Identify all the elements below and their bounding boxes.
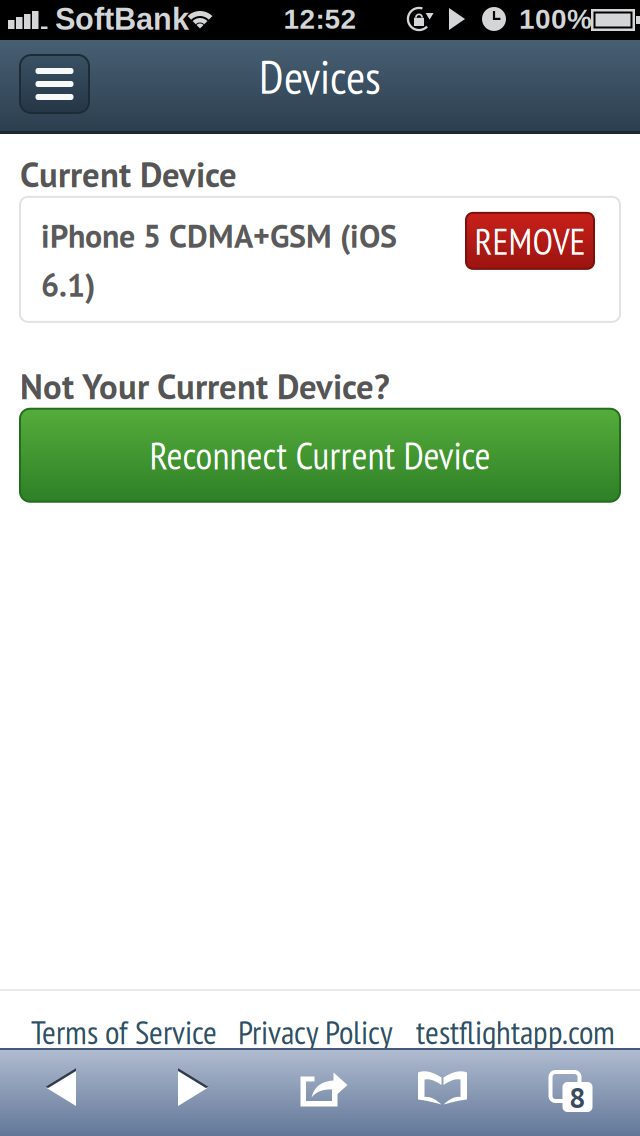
staticText: Privacy Policy	[238, 1010, 393, 1053]
button[interactable]: Back	[0, 1048, 123, 1136]
staticText: SoftBank	[55, 2, 189, 36]
staticText: Devices	[259, 46, 381, 107]
staticText: Terms of Service	[31, 1010, 217, 1053]
button[interactable]: Forward	[131, 1048, 256, 1136]
button[interactable]: Bookmarks	[380, 1048, 505, 1136]
button[interactable]: Terms of Service	[31, 1015, 211, 1049]
staticText: Reconnect Current Device	[149, 430, 490, 480]
staticText: iPhone 5 CDMA+GSM (iOS	[41, 215, 397, 257]
staticText: 12:52	[283, 3, 356, 35]
button[interactable]: testflightapp.com	[416, 1015, 616, 1049]
staticText: Not Your Current Device?	[20, 364, 390, 409]
staticText: Current Device	[20, 152, 237, 197]
staticText: 100%	[519, 3, 592, 35]
staticText: 8	[569, 1078, 586, 1116]
staticText: 6.1)	[41, 264, 95, 306]
button[interactable]: Privacy Policy	[238, 1015, 390, 1049]
button[interactable]: Share	[262, 1048, 387, 1136]
button[interactable]: Reconnect Current Device	[20, 409, 620, 502]
button[interactable]: REMOVE	[466, 213, 594, 269]
staticText: REMOVE	[474, 217, 585, 265]
button[interactable]: Tabs	[503, 1048, 628, 1136]
staticText: testflightapp.com	[416, 1010, 615, 1053]
button[interactable]: Menu	[20, 55, 89, 113]
